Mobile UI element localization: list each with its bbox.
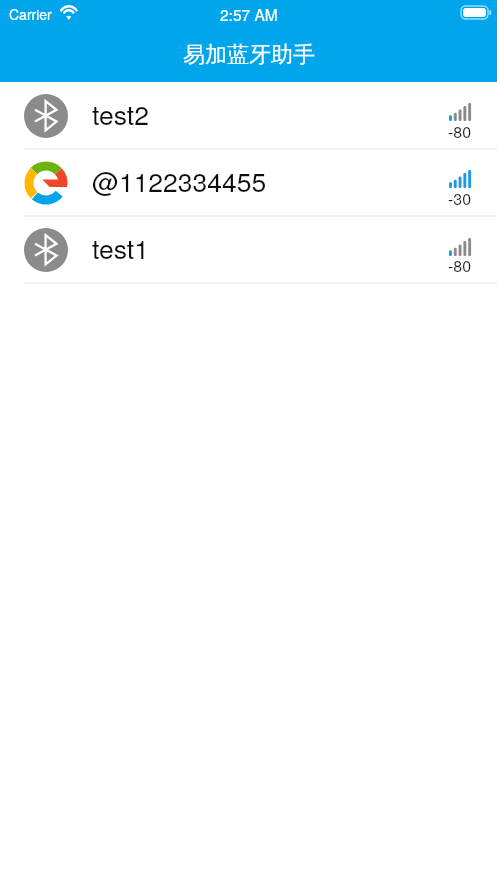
staticText: test1 <box>92 229 149 267</box>
staticText: Carrier <box>9 4 52 24</box>
button[interactable]: @1122334455 <box>0 149 497 216</box>
button[interactable]: test1 <box>0 216 497 283</box>
staticText: @1122334455 <box>92 162 267 200</box>
staticText: 易加蓝牙助手 <box>183 41 315 69</box>
staticText: -80 <box>448 254 472 277</box>
staticText: test2 <box>92 95 149 133</box>
button[interactable]: test2 <box>0 82 497 149</box>
staticText: -30 <box>448 187 472 210</box>
staticText: -80 <box>448 120 472 143</box>
staticText: 2:57 AM <box>220 3 278 25</box>
